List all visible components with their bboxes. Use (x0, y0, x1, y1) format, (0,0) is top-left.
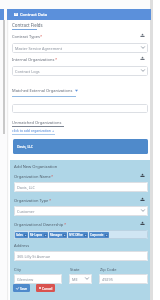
staticText: × (25, 234, 27, 237)
button[interactable]: Save (13, 284, 30, 292)
staticText: × (45, 234, 47, 237)
staticText: Unmatched Organizations (12, 120, 62, 125)
staticText: ME (72, 277, 78, 282)
other: Field options (140, 56, 145, 61)
button[interactable]: Contract Data (7, 9, 151, 20)
staticText: Organizational Ownership (14, 222, 64, 227)
button[interactable]: Manager (49, 232, 67, 238)
button[interactable]: ME (69, 274, 92, 284)
staticText: Internal Organizations (12, 57, 55, 62)
button[interactable]: click to add organization (12, 128, 55, 133)
button[interactable]: Davis, LLC (13, 139, 148, 154)
button[interactable]: Mr Lopez (29, 232, 48, 238)
staticText: Corporate (90, 233, 104, 237)
staticText: × (64, 234, 66, 237)
button[interactable]: Sales (15, 232, 28, 238)
staticText: Organization Type (14, 198, 49, 203)
staticText: click to add organization (12, 128, 51, 133)
staticText: Contract Types (12, 34, 40, 39)
staticText: Organization Name (14, 174, 51, 179)
button[interactable]: Contract Logs (12, 66, 148, 76)
button[interactable]: Glenview (14, 274, 62, 284)
other: Field options (140, 33, 145, 38)
staticText: Contract Logs (15, 69, 40, 74)
button[interactable]: Contract Fields (12, 22, 43, 28)
staticText: NYC Office (69, 233, 83, 237)
staticText: Customer (17, 209, 35, 214)
button[interactable]: Davis, LLC (14, 182, 148, 192)
staticText: Contract Data (20, 12, 48, 18)
button[interactable]: Sales (14, 230, 148, 239)
staticText: Mr Lopez (30, 233, 43, 237)
staticText: Contract Fields (12, 22, 43, 28)
staticText: * (55, 57, 58, 62)
staticText: Address (14, 243, 30, 248)
staticText: Save (20, 286, 28, 290)
other: Field options (140, 221, 145, 226)
other: Field options (140, 197, 145, 202)
button[interactable]: 49295 (99, 274, 148, 284)
staticText: Davis, LLC (17, 185, 35, 190)
staticText: * (51, 174, 54, 179)
staticText: Add New Organization (14, 164, 58, 170)
staticText: * (40, 34, 43, 39)
button[interactable]: Matched External Organizations (12, 88, 78, 93)
staticText: State (70, 267, 80, 272)
staticText: Glenview (17, 277, 34, 282)
staticText: Sales (16, 233, 23, 237)
button[interactable]: NYC Office (68, 232, 88, 238)
staticText: 365 Lilly St Avenue (17, 254, 51, 259)
staticText: * (49, 198, 52, 203)
button[interactable]: Master Service Agreement (12, 43, 148, 53)
staticText: 49295 (102, 277, 113, 282)
staticText: Zip Code (100, 267, 117, 272)
staticText: Cancel (42, 286, 53, 290)
staticText: + (52, 128, 55, 133)
staticText: × (85, 234, 87, 237)
button[interactable]: Customer (14, 206, 148, 216)
staticText: City (14, 267, 22, 272)
button[interactable]: Corporate (89, 232, 109, 238)
staticText: Matched External Organizations (12, 88, 73, 93)
staticText: Davis, LLC (17, 144, 34, 149)
button[interactable]: Cancel (36, 284, 55, 292)
other: Field options (140, 173, 145, 178)
staticText: × (106, 234, 108, 237)
button[interactable]: 365 Lilly St Avenue (14, 251, 148, 261)
button[interactable] (12, 104, 148, 113)
staticText: Master Service Agreement (15, 46, 63, 51)
staticText: * (64, 222, 67, 227)
staticText: Manager (50, 233, 62, 237)
